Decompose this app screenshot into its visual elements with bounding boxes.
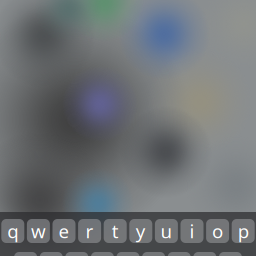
button[interactable]: k (193, 252, 216, 256)
staticText: t (112, 219, 119, 243)
button[interactable]: g (116, 252, 139, 256)
button[interactable]: e (52, 219, 75, 243)
button[interactable]: o (206, 219, 229, 243)
staticText: p (238, 219, 249, 243)
button[interactable]: s (40, 252, 63, 256)
button[interactable]: w (27, 219, 50, 243)
button[interactable]: y (129, 219, 152, 243)
button[interactable]: u (155, 219, 178, 243)
button[interactable]: i (180, 219, 203, 243)
staticText: i (189, 219, 194, 243)
button[interactable]: h (142, 252, 165, 256)
staticText: e (58, 219, 69, 243)
button[interactable]: r (78, 219, 101, 243)
staticText: w (31, 219, 46, 243)
button[interactable]: d (65, 252, 88, 256)
button[interactable]: j (168, 252, 191, 256)
staticText: u (160, 219, 172, 243)
button[interactable]: l (219, 252, 242, 256)
button[interactable]: t (104, 219, 127, 243)
staticText: o (212, 219, 223, 243)
staticText: q (7, 219, 18, 243)
staticText: r (86, 219, 94, 243)
button[interactable]: p (232, 219, 255, 243)
staticText: y (136, 219, 146, 243)
button[interactable]: f (91, 252, 114, 256)
button[interactable]: a (14, 252, 37, 256)
button[interactable]: q (1, 219, 24, 243)
